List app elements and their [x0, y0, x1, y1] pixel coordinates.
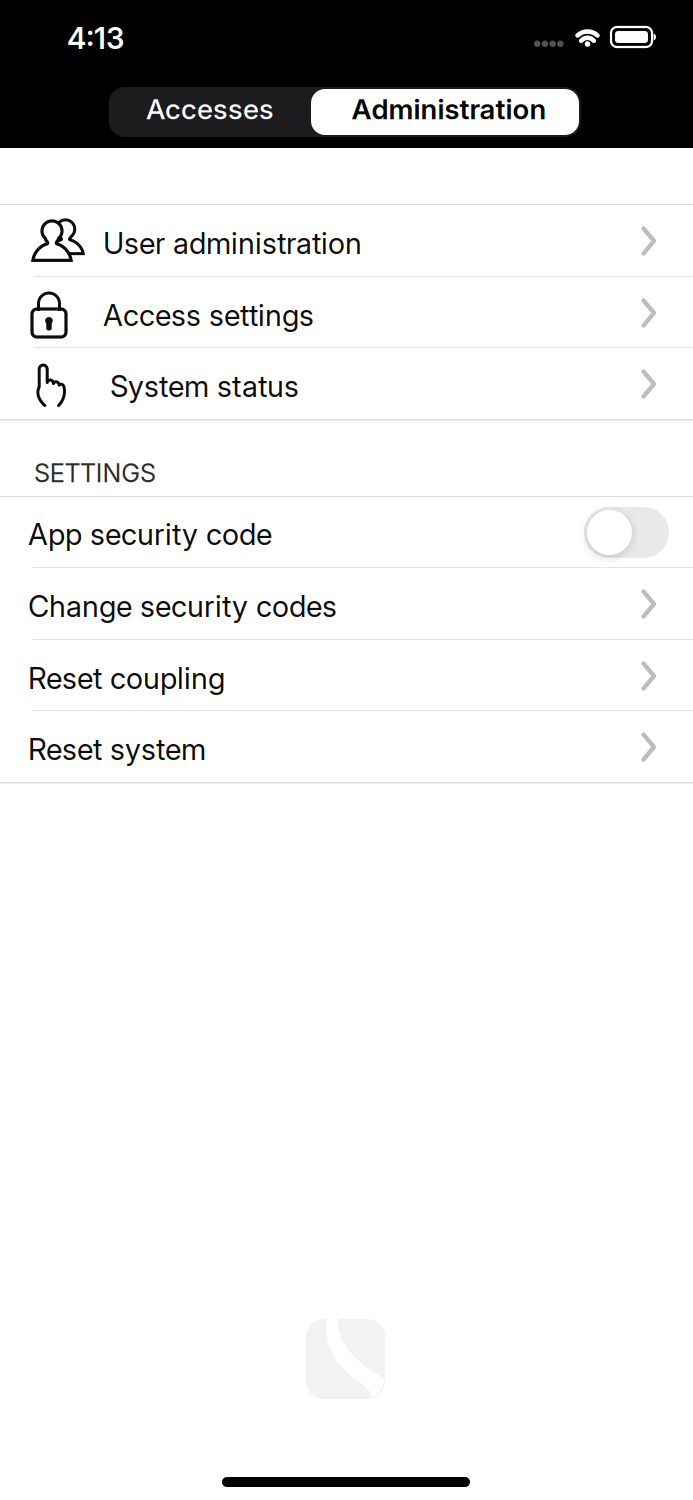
staticText: Change security codes	[28, 589, 337, 624]
staticText: Reset coupling	[28, 661, 225, 696]
staticText: 4:13	[67, 21, 124, 56]
button[interactable]: Accesses	[109, 87, 311, 137]
button[interactable]: User administration	[0, 205, 693, 276]
staticText: Administration	[351, 92, 546, 125]
button[interactable]: Reset coupling	[0, 640, 693, 711]
button[interactable]: Access settings	[0, 277, 693, 348]
button[interactable]: App security code	[584, 507, 669, 558]
button[interactable]: System status	[0, 348, 693, 419]
staticText: Reset system	[28, 732, 206, 767]
staticText: Access settings	[103, 298, 314, 333]
staticText: System status	[110, 369, 299, 404]
staticText: App security code	[28, 517, 272, 552]
staticText: Accesses	[146, 92, 274, 125]
button[interactable]: Change security codes	[0, 568, 693, 639]
button[interactable]: Reset system	[0, 711, 693, 782]
staticText: SETTINGS	[34, 458, 156, 488]
button[interactable]: Administration	[311, 89, 579, 135]
staticText: User administration	[103, 226, 362, 261]
